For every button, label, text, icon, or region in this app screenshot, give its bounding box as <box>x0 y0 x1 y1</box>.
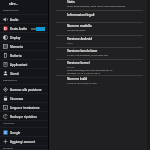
button[interactable]: Batteria <box>0 51 48 60</box>
button[interactable]: Versione banda base <box>49 48 150 59</box>
button[interactable]: Numero modello <box>49 23 150 35</box>
button[interactable]: Versione Android <box>49 36 150 47</box>
button[interactable]: Beats Audio <box>0 24 48 33</box>
staticText: Google <box>10 131 45 135</box>
staticText: Batteria <box>10 54 45 58</box>
button[interactable]: Sicurezza <box>0 94 48 103</box>
staticText: Stato <box>67 0 75 4</box>
button[interactable]: Utenti <box>0 69 48 78</box>
staticText: altro… <box>9 2 19 6</box>
button[interactable]: Aggiungi account <box>0 137 48 146</box>
button[interactable]: Applicazioni <box>0 60 48 69</box>
staticText: ACCOUNT <box>3 121 15 124</box>
staticText: Applicazioni <box>10 63 45 67</box>
staticText: DISPOSITIVO <box>3 8 19 11</box>
button[interactable]: Informazioni legali <box>49 11 150 22</box>
button[interactable]: Google <box>0 128 48 137</box>
staticText: HT36SW902885 <box>67 28 86 31</box>
staticText: Informazioni legali <box>67 13 95 17</box>
staticText: Utenti <box>10 72 45 76</box>
button[interactable]: Display <box>0 33 48 42</box>
staticText: PERSONALE <box>3 78 17 81</box>
staticText: Numero build <box>67 77 88 81</box>
staticText: Accesso alla posizione <box>10 88 45 92</box>
button[interactable]: Accesso alla posizione <box>0 85 48 94</box>
staticText: 3.4.10 androidbuild@abm-rhel-buildserver… <box>67 65 113 74</box>
staticText: Stato della batteria, della rete e altre… <box>67 4 126 7</box>
button[interactable]: Backup e ripristino <box>0 112 48 121</box>
staticText: Beats Audio <box>10 27 31 31</box>
staticText: Versione kernel <box>67 61 90 65</box>
staticText: SISTEMA <box>3 146 14 149</box>
button[interactable]: Audio <box>0 15 48 24</box>
staticText: Versione banda base <box>67 49 98 53</box>
staticText: Sicurezza <box>10 97 45 101</box>
staticText: Display <box>10 36 45 40</box>
staticText: Versione Android <box>67 37 93 41</box>
button[interactable]: Lingua e immissione <box>0 103 48 112</box>
button[interactable]: Stato <box>49 0 150 10</box>
button[interactable]: Numero build <box>49 76 150 87</box>
staticText: K1.29.1.30.0930e00,10.42.4050.00L <box>67 53 109 56</box>
staticText: Aggiungi account <box>10 140 45 144</box>
button[interactable]: altro… <box>0 0 48 8</box>
staticText: Lingua e immissione <box>10 106 45 110</box>
staticText: Memoria <box>10 45 45 49</box>
staticText: Audio <box>10 18 45 22</box>
button[interactable]: Versione kernel <box>49 60 150 75</box>
staticText: 41.0014.2013.05.941.com <box>67 81 97 84</box>
button[interactable]: Memoria <box>0 42 48 51</box>
staticText: Numero modello <box>67 24 92 28</box>
staticText: Backup e ripristino <box>10 115 45 119</box>
staticText: 4.2.2 <box>67 41 73 44</box>
